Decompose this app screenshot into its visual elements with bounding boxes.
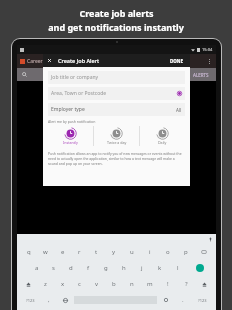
button[interactable]: Job title or company bbox=[48, 71, 185, 84]
button[interactable]: s bbox=[45, 260, 62, 276]
staticText: n bbox=[130, 280, 134, 288]
button[interactable]: Voice input bbox=[208, 237, 213, 242]
button[interactable]: More options bbox=[206, 57, 213, 66]
button[interactable]: k bbox=[151, 260, 169, 276]
button[interactable]: t bbox=[88, 244, 105, 260]
button[interactable]: Shift bbox=[20, 276, 37, 292]
button[interactable]: ? bbox=[177, 276, 195, 292]
staticText: c bbox=[78, 280, 81, 288]
staticText: Alert me by push notification bbox=[48, 119, 96, 124]
button[interactable]: Search bbox=[22, 72, 27, 77]
button[interactable]: c bbox=[71, 276, 88, 292]
button[interactable]: Close bbox=[47, 58, 52, 63]
button[interactable]: DONE bbox=[168, 57, 186, 65]
staticText: 15:04 bbox=[202, 47, 213, 52]
button[interactable]: y bbox=[105, 244, 123, 260]
button[interactable]: Employer type bbox=[48, 103, 185, 116]
staticText: m bbox=[147, 280, 153, 288]
button[interactable]: g bbox=[97, 260, 115, 276]
button[interactable]: ?123 bbox=[191, 292, 213, 308]
staticText: and get notifications instantly bbox=[48, 21, 184, 33]
staticText: DONE bbox=[170, 58, 184, 64]
staticText: o bbox=[166, 248, 170, 256]
staticText: Create job alerts bbox=[79, 7, 154, 19]
button[interactable]: l bbox=[169, 260, 187, 276]
button[interactable]: , bbox=[41, 292, 57, 308]
staticText: Job title or company bbox=[51, 74, 99, 81]
button[interactable]: Instantly bbox=[48, 126, 93, 147]
staticText: h bbox=[122, 264, 126, 272]
button[interactable]: x bbox=[54, 276, 71, 292]
staticText: Push notification allows an app to notif… bbox=[48, 151, 185, 166]
staticText: q bbox=[27, 248, 31, 256]
staticText: u bbox=[130, 248, 134, 256]
staticText: j bbox=[141, 264, 143, 272]
button[interactable]: u bbox=[123, 244, 141, 260]
staticText: y bbox=[112, 248, 116, 256]
staticText: ?123 bbox=[198, 298, 207, 303]
button[interactable]: n bbox=[123, 276, 141, 292]
staticText: Twice a day bbox=[107, 140, 127, 145]
staticText: i bbox=[149, 248, 151, 256]
staticText: ?123 bbox=[26, 298, 35, 303]
staticText: ALERTS bbox=[193, 72, 209, 78]
staticText: Create Job Alert bbox=[58, 57, 100, 64]
button[interactable]: a bbox=[28, 260, 45, 276]
staticText: Daily bbox=[158, 140, 167, 145]
button[interactable]: Shift bbox=[195, 276, 213, 292]
staticText: ! bbox=[167, 280, 169, 288]
button[interactable]: j bbox=[133, 260, 151, 276]
staticText: All bbox=[176, 107, 182, 113]
button[interactable]: q bbox=[20, 244, 37, 260]
button[interactable]: r bbox=[71, 244, 88, 260]
button[interactable]: v bbox=[88, 276, 105, 292]
button[interactable]: ! bbox=[159, 276, 177, 292]
button[interactable]: Enter bbox=[187, 260, 213, 276]
button[interactable]: w bbox=[37, 244, 54, 260]
button[interactable]: z bbox=[37, 276, 54, 292]
button[interactable]: ?123 bbox=[20, 292, 41, 308]
staticText: Careers bbox=[27, 58, 46, 65]
button[interactable]: h bbox=[115, 260, 133, 276]
staticText: l bbox=[177, 264, 179, 272]
button[interactable]: Daily bbox=[140, 126, 185, 147]
staticText: , bbox=[48, 296, 50, 304]
staticText: Instantly bbox=[63, 140, 78, 145]
staticText: t bbox=[95, 248, 98, 256]
button[interactable]: p bbox=[177, 244, 195, 260]
button[interactable]: d bbox=[62, 260, 79, 276]
staticText: r bbox=[78, 248, 81, 256]
button[interactable]: i bbox=[141, 244, 159, 260]
staticText: p bbox=[184, 248, 188, 256]
staticText: v bbox=[95, 280, 99, 288]
button[interactable]: Backspace bbox=[195, 244, 213, 260]
staticText: d bbox=[69, 264, 73, 272]
button[interactable]: o bbox=[159, 244, 177, 260]
staticText: b bbox=[112, 280, 116, 288]
staticText: s bbox=[52, 264, 55, 272]
staticText: ? bbox=[185, 280, 188, 288]
staticText: . bbox=[182, 296, 184, 304]
staticText: z bbox=[44, 280, 47, 288]
staticText: f bbox=[87, 264, 90, 272]
staticText: x bbox=[61, 280, 65, 288]
button[interactable]: b bbox=[105, 276, 123, 292]
staticText: g bbox=[104, 264, 108, 272]
staticText: a bbox=[35, 264, 39, 272]
button[interactable]: m bbox=[141, 276, 159, 292]
button[interactable]: Area, Town or Postcode bbox=[48, 87, 185, 100]
staticText: e bbox=[61, 248, 65, 256]
button[interactable] bbox=[157, 292, 174, 308]
other: Use my location bbox=[177, 91, 182, 96]
staticText: w bbox=[43, 248, 48, 256]
button[interactable]: e bbox=[54, 244, 71, 260]
button[interactable]: Change keyboard bbox=[57, 292, 74, 308]
button[interactable]: f bbox=[79, 260, 97, 276]
staticText: k bbox=[158, 264, 162, 272]
staticText: Area, Town or Postcode bbox=[51, 90, 107, 97]
button[interactable]: Twice a day bbox=[94, 126, 139, 147]
button[interactable]: ALERTS bbox=[191, 71, 211, 79]
staticText: Employer type bbox=[51, 106, 85, 113]
